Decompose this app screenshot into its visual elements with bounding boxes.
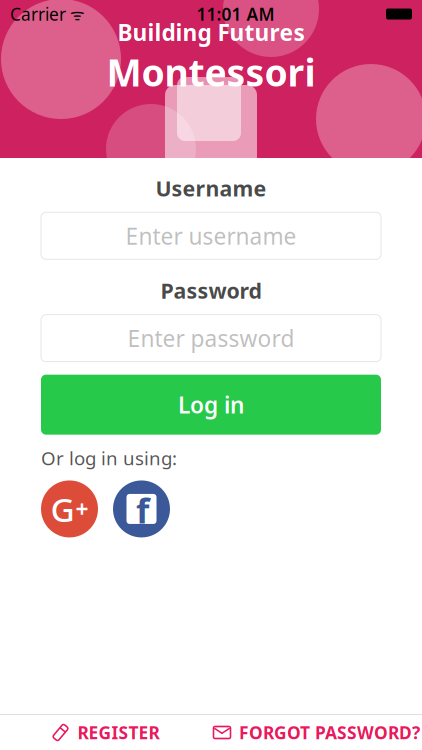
button[interactable]: Log in with Google Plus xyxy=(41,480,98,537)
staticText: Log in xyxy=(178,390,244,420)
staticText: Building Futures xyxy=(117,17,304,47)
staticText: Carrier xyxy=(10,2,66,25)
staticText: Enter password xyxy=(127,323,294,353)
staticText: Enter username xyxy=(125,221,296,251)
button[interactable]: REGISTER xyxy=(0,715,211,750)
staticText: Username xyxy=(155,174,266,202)
staticText: 11:01 AM xyxy=(196,2,274,25)
staticText: Password xyxy=(160,276,261,305)
staticText: Or log in using: xyxy=(41,446,177,470)
staticText: Montessori xyxy=(106,47,315,97)
staticText: G xyxy=(50,487,74,531)
button[interactable]: Log in xyxy=(41,375,381,435)
button[interactable]: FORGOT PASSWORD? xyxy=(211,715,422,750)
staticText: + xyxy=(75,494,88,524)
button[interactable]: Log in with Facebook xyxy=(113,480,170,537)
staticText: ᯤ xyxy=(66,3,85,25)
staticText: REGISTER xyxy=(77,721,159,744)
staticText: f xyxy=(136,487,149,533)
staticText: FORGOT PASSWORD? xyxy=(239,721,420,744)
